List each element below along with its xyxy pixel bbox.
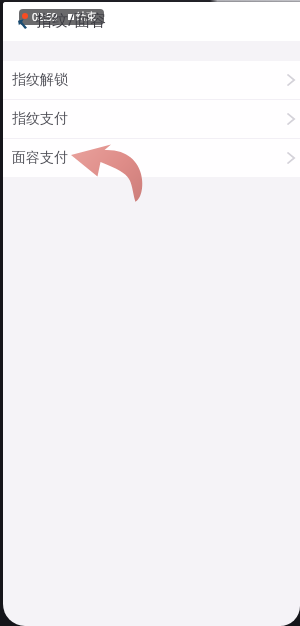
staticText: 面容支付 <box>12 149 68 167</box>
other: Pointer <box>18 19 27 29</box>
staticText: 02:59 <box>32 10 58 24</box>
staticText: 指纹支付 <box>12 110 68 128</box>
button[interactable]: 面容支付 <box>3 139 300 177</box>
button[interactable] <box>3 2 300 41</box>
staticText: 结束 <box>76 10 96 23</box>
button[interactable]: 结束录屏 <box>19 9 104 25</box>
button[interactable]: 指纹解锁 <box>3 61 300 99</box>
button[interactable]: 指纹支付 <box>3 100 300 138</box>
staticText: 指纹/面容 <box>36 9 106 31</box>
staticText: 指纹解锁 <box>12 71 68 89</box>
